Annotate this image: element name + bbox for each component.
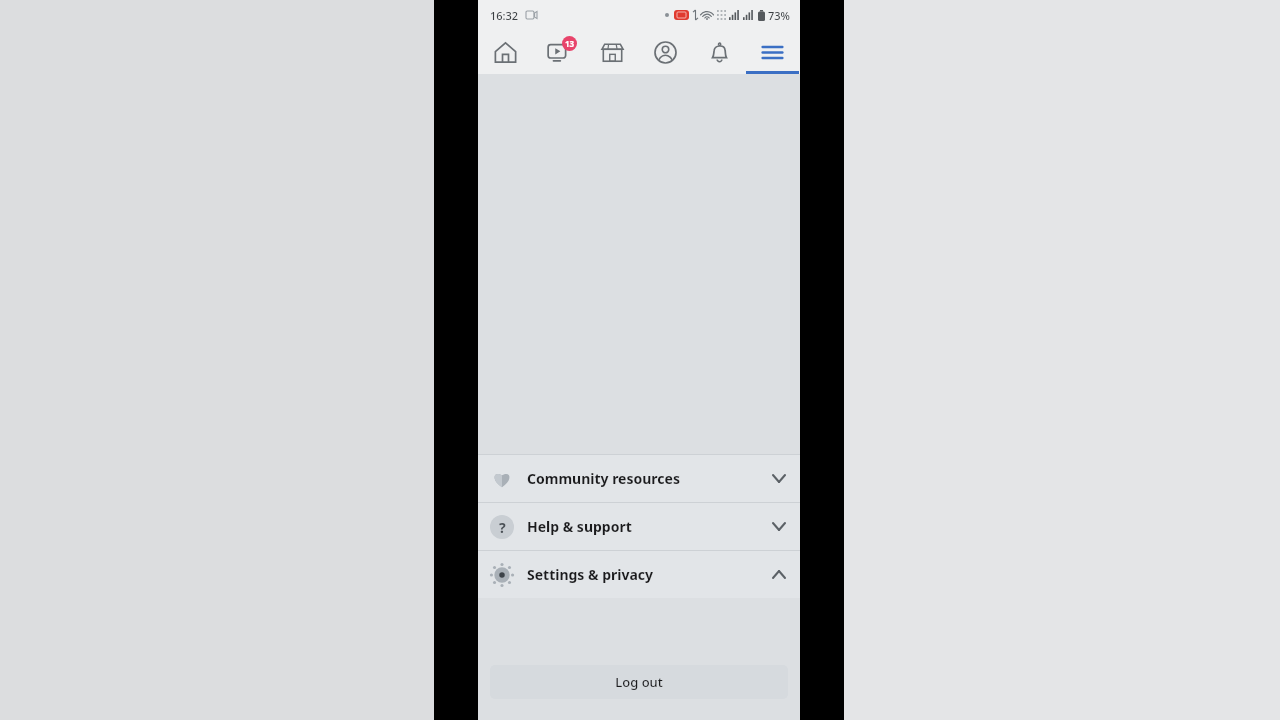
button[interactable]: ? — [478, 503, 800, 550]
button[interactable]: Menu — [746, 30, 799, 74]
button[interactable]: Marketplace — [586, 30, 639, 74]
staticText: Help & support — [527, 517, 632, 536]
button[interactable]: Home — [479, 30, 532, 74]
staticText: Settings & privacy — [527, 565, 654, 584]
button[interactable]: Profile — [639, 30, 692, 74]
staticText: 73% — [768, 8, 790, 23]
staticText: 13 — [565, 38, 575, 49]
button[interactable]: Settings & privacy — [478, 551, 800, 598]
button[interactable]: Video — [532, 30, 585, 74]
staticText: ? — [499, 518, 506, 537]
staticText: Log out — [615, 673, 663, 691]
button[interactable]: Log out — [490, 665, 788, 699]
staticText: 16:32 — [490, 8, 519, 23]
staticText: Community resources — [527, 469, 680, 488]
button[interactable]: Community resources — [478, 455, 800, 502]
button[interactable]: Notifications — [693, 30, 746, 74]
